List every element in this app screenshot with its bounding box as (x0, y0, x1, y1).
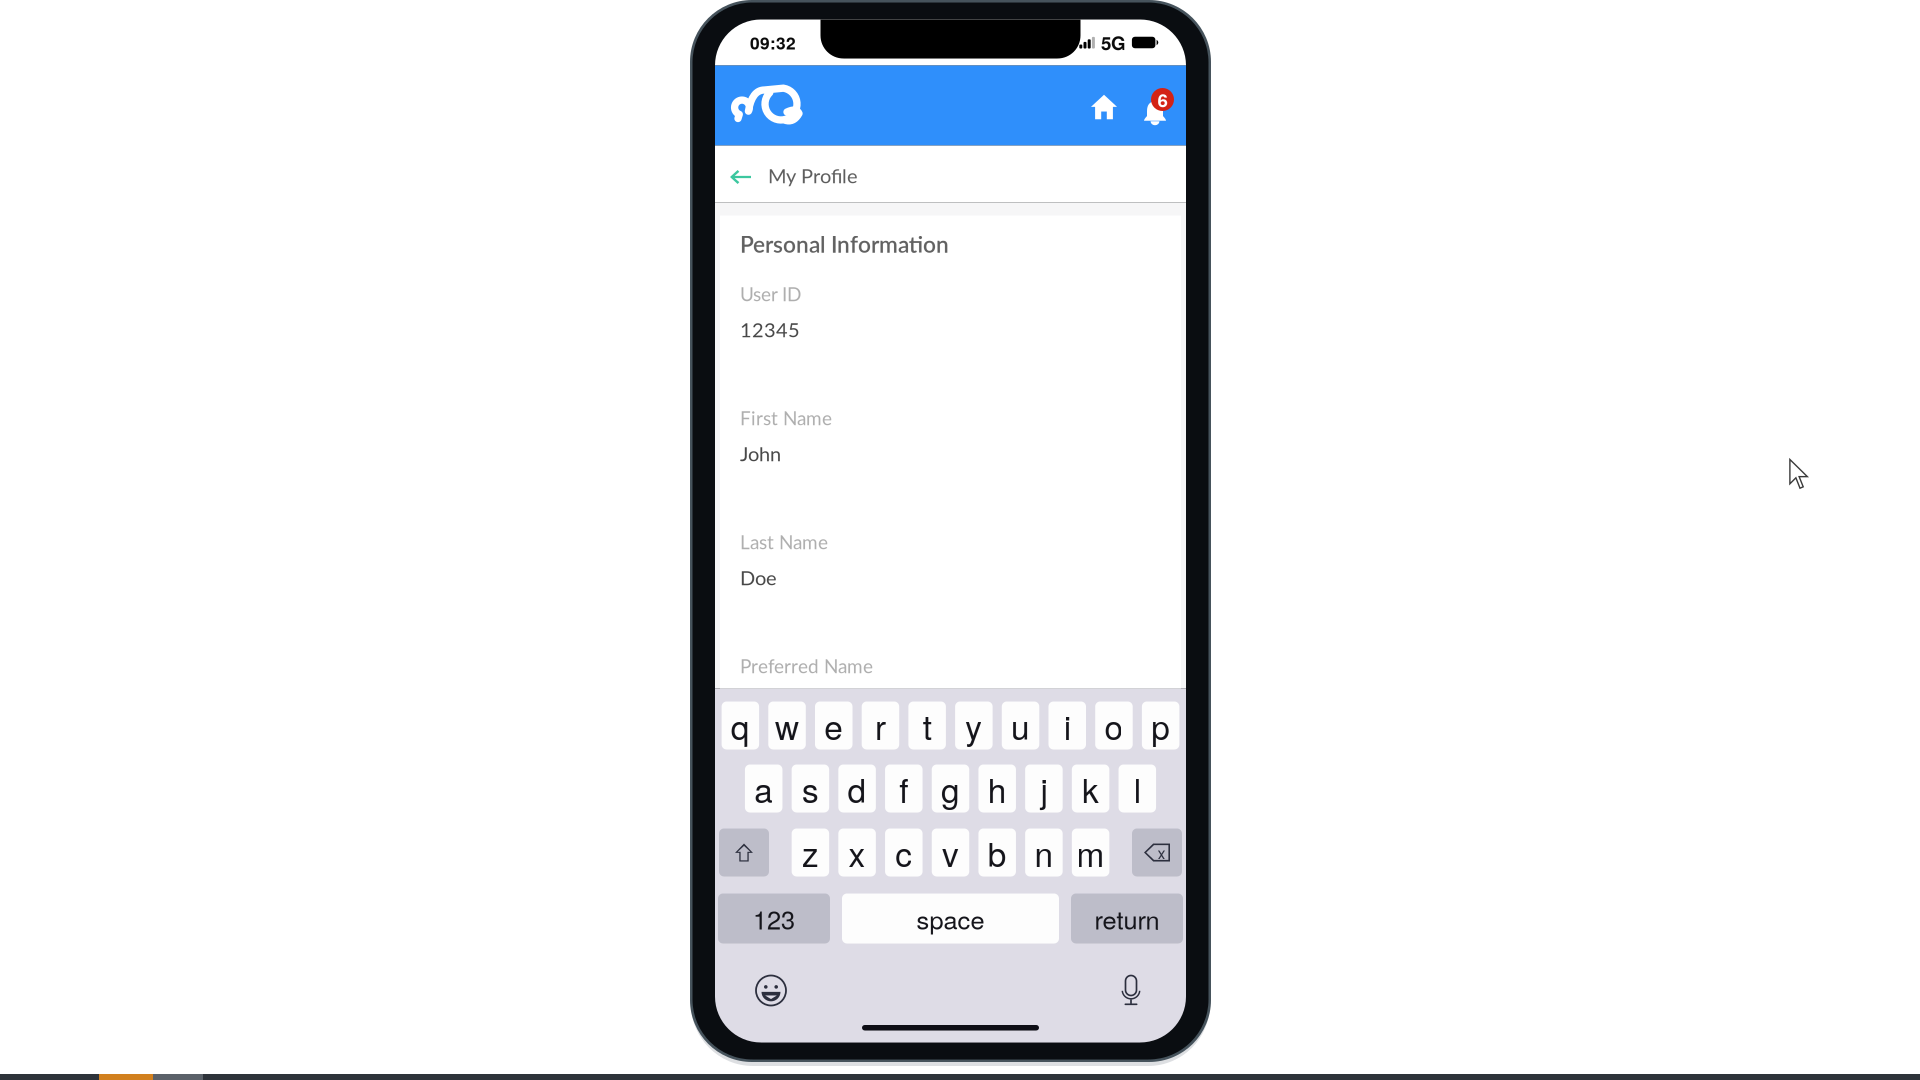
staticText: m (1077, 829, 1105, 876)
staticText: n (1034, 829, 1053, 876)
staticText: b (988, 829, 1007, 876)
button[interactable]: i (1048, 701, 1086, 749)
staticText: My Profile (768, 163, 858, 187)
button[interactable]: m (1072, 828, 1109, 876)
staticText: u (1011, 702, 1030, 749)
button[interactable]: s (792, 764, 829, 812)
button[interactable]: j (1025, 764, 1063, 812)
staticText: s (802, 765, 819, 812)
button[interactable]: a (745, 764, 782, 812)
button[interactable]: v (932, 828, 969, 876)
staticText: p (1151, 702, 1170, 749)
staticText: 12345 (740, 317, 800, 341)
button[interactable]: y (955, 701, 993, 749)
button[interactable]: x (838, 828, 876, 876)
button[interactable]: b (978, 828, 1016, 876)
button[interactable]: q (722, 701, 759, 749)
staticText: User ID (740, 282, 801, 305)
staticText: 5G (1101, 29, 1126, 56)
staticText: d (848, 765, 867, 812)
button[interactable]: t (908, 701, 946, 749)
button[interactable]: Notifications, 6 unread (1135, 78, 1186, 132)
button[interactable]: Brand home (731, 65, 804, 145)
staticText: l (1134, 765, 1141, 812)
button[interactable]: 123 (718, 893, 830, 943)
staticText: w (775, 702, 799, 749)
staticText: Preferred Name (740, 654, 873, 677)
staticText: j (1040, 765, 1047, 812)
staticText: r (875, 702, 886, 749)
button[interactable]: Home (1083, 78, 1135, 133)
button[interactable]: Emoji (756, 975, 786, 1005)
button[interactable]: Dictate (1117, 973, 1145, 1007)
staticText: f (899, 765, 908, 812)
button[interactable]: Back (720, 151, 763, 197)
staticText: q (731, 702, 750, 749)
button[interactable]: return (1071, 893, 1183, 943)
button[interactable]: u (1002, 701, 1039, 749)
staticText: e (824, 702, 843, 749)
button[interactable]: n (1025, 828, 1063, 876)
staticText: a (754, 765, 773, 812)
staticText: John (740, 441, 781, 465)
button[interactable]: z (792, 828, 829, 876)
staticText: c (895, 829, 912, 876)
button[interactable]: space (842, 893, 1059, 943)
staticText: 09:32 (750, 30, 796, 55)
button[interactable]: Delete (1132, 828, 1182, 876)
button[interactable]: o (1095, 701, 1133, 749)
staticText: First Name (740, 406, 832, 429)
staticText: space (916, 900, 984, 937)
button[interactable]: p (1142, 701, 1179, 749)
staticText: v (942, 829, 959, 876)
staticText: x (849, 829, 866, 876)
button[interactable]: k (1072, 764, 1109, 812)
staticText: 6 (1157, 86, 1167, 113)
staticText: return (1094, 900, 1159, 937)
staticText: k (1082, 765, 1099, 812)
button[interactable]: c (885, 828, 922, 876)
staticText: 123 (753, 900, 795, 937)
staticText: Doe (740, 565, 777, 589)
button[interactable]: d (838, 764, 876, 812)
staticText: Personal Information (740, 230, 949, 258)
staticText: i (1064, 702, 1071, 749)
staticText: g (941, 765, 960, 812)
button[interactable]: e (815, 701, 852, 749)
button[interactable]: f (885, 764, 923, 812)
staticText: o (1104, 702, 1123, 749)
button[interactable]: Shift (719, 828, 769, 876)
button[interactable]: l (1118, 764, 1156, 812)
button[interactable]: g (932, 764, 969, 812)
staticText: Last Name (740, 530, 828, 553)
staticText: h (988, 765, 1007, 812)
staticText: x (1157, 841, 1165, 864)
staticText: t (923, 702, 932, 749)
staticText: z (802, 829, 819, 876)
button[interactable]: w (768, 701, 806, 749)
button[interactable]: h (978, 764, 1016, 812)
button[interactable]: r (862, 701, 899, 749)
staticText: y (965, 702, 982, 749)
